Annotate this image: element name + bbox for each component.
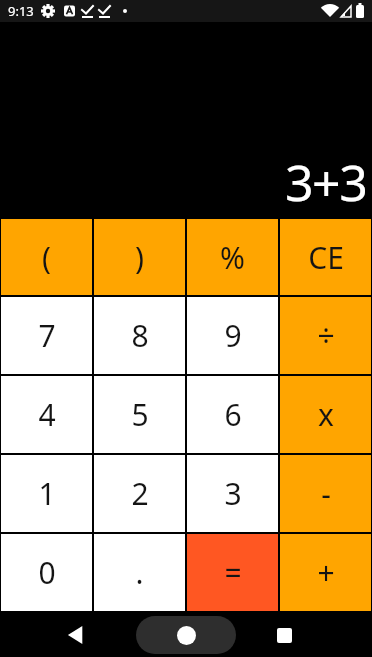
button[interactable]: = bbox=[186, 533, 279, 612]
button[interactable]: - bbox=[279, 454, 372, 533]
staticText: % bbox=[220, 237, 245, 278]
staticText: ) bbox=[135, 237, 144, 278]
staticText: ( bbox=[42, 237, 51, 278]
staticText: = bbox=[224, 552, 242, 593]
staticText: 3+3 bbox=[285, 148, 367, 216]
button[interactable]: 7 bbox=[0, 296, 93, 375]
staticText: 7 bbox=[38, 315, 56, 356]
button[interactable]: ) bbox=[93, 218, 186, 296]
staticText: 0 bbox=[38, 552, 56, 593]
button[interactable] bbox=[264, 615, 304, 655]
staticText: 1 bbox=[38, 473, 56, 514]
button[interactable]: . bbox=[93, 533, 186, 612]
staticText: x bbox=[318, 394, 334, 435]
staticText: 3 bbox=[224, 473, 242, 514]
button[interactable]: ( bbox=[0, 218, 93, 296]
button[interactable] bbox=[136, 616, 236, 654]
staticText: 2 bbox=[131, 473, 149, 514]
button[interactable]: 2 bbox=[93, 454, 186, 533]
staticText: 9:13 bbox=[8, 2, 34, 20]
button[interactable]: 5 bbox=[93, 375, 186, 454]
staticText: - bbox=[321, 473, 331, 514]
button[interactable]: + bbox=[279, 533, 372, 612]
button[interactable]: x bbox=[279, 375, 372, 454]
button[interactable]: 8 bbox=[93, 296, 186, 375]
button[interactable]: 0 bbox=[0, 533, 93, 612]
button[interactable]: % bbox=[186, 218, 279, 296]
staticText: 5 bbox=[131, 394, 149, 435]
staticText: ÷ bbox=[317, 315, 335, 356]
staticText: 4 bbox=[38, 394, 56, 435]
staticText: 6 bbox=[224, 394, 242, 435]
button[interactable] bbox=[56, 615, 96, 655]
button[interactable]: ÷ bbox=[279, 296, 372, 375]
staticText: 9 bbox=[224, 315, 242, 356]
button[interactable]: 4 bbox=[0, 375, 93, 454]
staticText: CE bbox=[308, 237, 344, 278]
button[interactable]: 1 bbox=[0, 454, 93, 533]
button[interactable]: 6 bbox=[186, 375, 279, 454]
staticText: . bbox=[135, 552, 144, 593]
button[interactable]: CE bbox=[279, 218, 372, 296]
button[interactable]: 9 bbox=[186, 296, 279, 375]
staticText: 8 bbox=[131, 315, 149, 356]
button[interactable]: 3 bbox=[186, 454, 279, 533]
staticText: + bbox=[317, 552, 335, 593]
